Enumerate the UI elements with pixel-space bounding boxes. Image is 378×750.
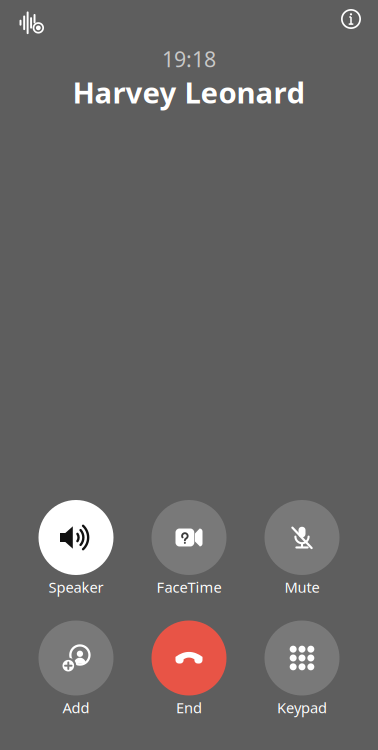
staticText: Keypad xyxy=(277,698,327,717)
button[interactable]: Speaker xyxy=(21,500,131,599)
staticText: End xyxy=(176,698,202,717)
button[interactable]: Keypad xyxy=(247,620,357,719)
button[interactable]: Call info xyxy=(331,0,371,39)
staticText: Mute xyxy=(284,577,319,597)
staticText: Speaker xyxy=(48,577,103,597)
staticText: FaceTime xyxy=(156,577,221,597)
staticText: Add xyxy=(62,698,89,717)
button[interactable]: End xyxy=(134,620,244,719)
staticText: 19:18 xyxy=(162,45,216,73)
button[interactable]: FaceTime xyxy=(134,500,244,599)
button[interactable]: Mute xyxy=(247,500,357,599)
staticText: Harvey Leonard xyxy=(72,72,305,111)
button[interactable]: Audio route xyxy=(12,3,52,43)
button[interactable]: Add xyxy=(21,620,131,719)
